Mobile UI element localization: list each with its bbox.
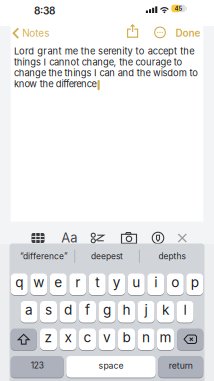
staticText: 45 — [174, 5, 182, 12]
button[interactable]: k — [157, 301, 174, 322]
staticText: k — [162, 301, 169, 318]
staticText: Notes — [22, 27, 49, 39]
button[interactable]: h — [118, 301, 135, 322]
button[interactable]: v — [98, 328, 115, 350]
staticText: space — [98, 360, 123, 371]
staticText: e — [54, 274, 62, 290]
staticText: m — [159, 329, 171, 345]
button[interactable]: s — [40, 301, 57, 322]
staticText: things I cannot change, the courage to — [14, 56, 183, 68]
button[interactable]: space — [66, 356, 156, 377]
button[interactable]: g — [98, 301, 115, 322]
button[interactable]: Format — [61, 230, 77, 245]
button[interactable]: e — [50, 273, 67, 295]
button[interactable]: a — [20, 301, 37, 322]
staticText: t — [95, 274, 99, 290]
button[interactable]: j — [137, 301, 154, 322]
staticText: o — [171, 274, 179, 290]
staticText: Aa — [61, 230, 77, 245]
staticText: q — [15, 274, 23, 290]
staticText: know the difference — [14, 78, 96, 89]
staticText: p — [191, 274, 199, 290]
staticText: c — [83, 329, 91, 345]
button[interactable]: Delete — [177, 328, 203, 350]
button[interactable]: 123 — [11, 356, 64, 377]
button[interactable]: y — [108, 273, 125, 295]
button[interactable]: return — [158, 356, 203, 377]
staticText: v — [103, 329, 111, 345]
button[interactable]: l — [176, 301, 193, 322]
staticText: s — [45, 301, 52, 318]
button[interactable]: d — [59, 301, 76, 322]
button[interactable]: Checklist — [91, 233, 104, 243]
button[interactable]: z — [40, 328, 57, 350]
button[interactable]: Markup — [152, 232, 164, 244]
staticText: n — [142, 329, 150, 345]
staticText: j — [144, 301, 147, 318]
staticText: change the things I can and the wisdom t… — [14, 67, 198, 79]
staticText: deepest — [91, 251, 123, 261]
staticText: g — [103, 301, 111, 318]
staticText: y — [113, 274, 121, 290]
staticText: l — [183, 301, 186, 318]
button[interactable]: deepest — [76, 246, 138, 267]
staticText: Lord grant me the serenity to accept the — [14, 45, 194, 57]
button[interactable]: “difference” — [12, 246, 75, 267]
staticText: a — [25, 301, 33, 318]
staticText: return — [169, 360, 193, 371]
staticText: f — [85, 301, 90, 318]
staticText: 8:38 — [34, 5, 55, 17]
button[interactable]: t — [89, 273, 106, 295]
button[interactable]: x — [59, 328, 76, 350]
staticText: b — [122, 329, 130, 345]
button[interactable]: b — [118, 328, 135, 350]
staticText: w — [33, 274, 44, 290]
staticText: Done — [175, 27, 200, 39]
staticText: d — [64, 301, 72, 318]
button[interactable]: w — [30, 273, 47, 295]
button[interactable]: Done — [175, 27, 200, 39]
staticText: h — [122, 301, 130, 318]
button[interactable]: m — [157, 328, 174, 350]
button[interactable]: n — [137, 328, 154, 350]
button[interactable]: Shift — [11, 328, 37, 350]
button[interactable]: q — [11, 273, 28, 295]
staticText: z — [44, 329, 52, 345]
button[interactable]: o — [167, 273, 184, 295]
staticText: x — [64, 329, 71, 345]
button[interactable]: c — [79, 328, 96, 350]
button[interactable]: f — [79, 301, 96, 322]
button[interactable]: Insert photo — [121, 233, 136, 243]
staticText: depths — [158, 251, 185, 261]
button[interactable]: i — [147, 273, 164, 295]
staticText: 123 — [31, 360, 44, 371]
button[interactable]: p — [186, 273, 203, 295]
staticText: “difference” — [20, 251, 68, 261]
staticText: u — [132, 274, 140, 290]
button[interactable]: Dismiss keyboard — [178, 234, 186, 242]
staticText: i — [154, 274, 157, 290]
button[interactable]: depths — [140, 246, 203, 267]
button[interactable]: Share — [128, 25, 138, 37]
button[interactable]: r — [69, 273, 86, 295]
button[interactable]: u — [128, 273, 145, 295]
button[interactable]: Notes — [13, 27, 49, 39]
button[interactable]: Insert table — [31, 233, 44, 243]
staticText: r — [75, 274, 80, 290]
button[interactable]: More — [155, 27, 165, 38]
